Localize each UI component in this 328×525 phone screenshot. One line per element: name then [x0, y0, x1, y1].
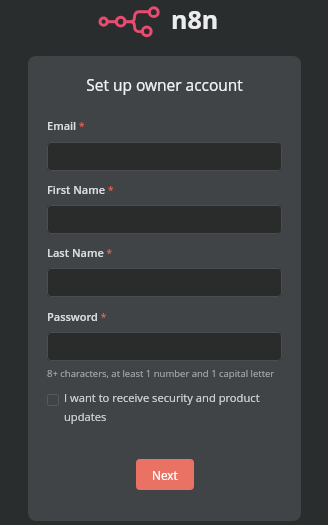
button[interactable]: Password	[47, 332, 282, 361]
staticText: Email *	[47, 118, 85, 133]
staticText: 8+ characters, at least 1 number and 1 c…	[47, 367, 275, 380]
staticText: Last Name *	[47, 245, 113, 260]
button[interactable]: Last Name	[47, 268, 282, 297]
button[interactable]: I want to receive security and product u…	[47, 390, 282, 424]
staticText: Set up owner account	[47, 74, 282, 95]
button[interactable]: Email	[47, 142, 282, 171]
button[interactable]: Next	[136, 459, 194, 490]
button[interactable]: First Name	[47, 205, 282, 234]
staticText: Next	[152, 467, 178, 483]
staticText: n8n	[171, 2, 219, 36]
staticText: I want to receive security and product u…	[64, 390, 282, 424]
staticText: First Name *	[47, 182, 114, 197]
staticText: Password *	[47, 309, 107, 324]
